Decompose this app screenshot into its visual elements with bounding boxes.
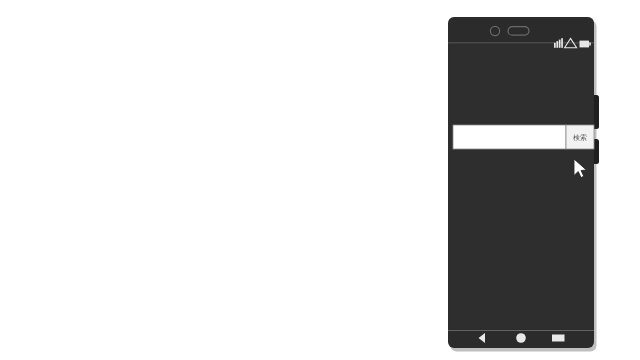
- button[interactable]: Home: [512, 326, 530, 342]
- button[interactable]: Power button: [594, 139, 600, 164]
- button[interactable]: Recent apps: [550, 326, 568, 342]
- button[interactable]: Search input field: [453, 125, 566, 149]
- staticText: 検索: [566, 133, 594, 142]
- button[interactable]: 検索: [566, 125, 594, 149]
- button[interactable]: Volume button: [594, 95, 600, 129]
- button[interactable]: Back: [473, 326, 491, 342]
